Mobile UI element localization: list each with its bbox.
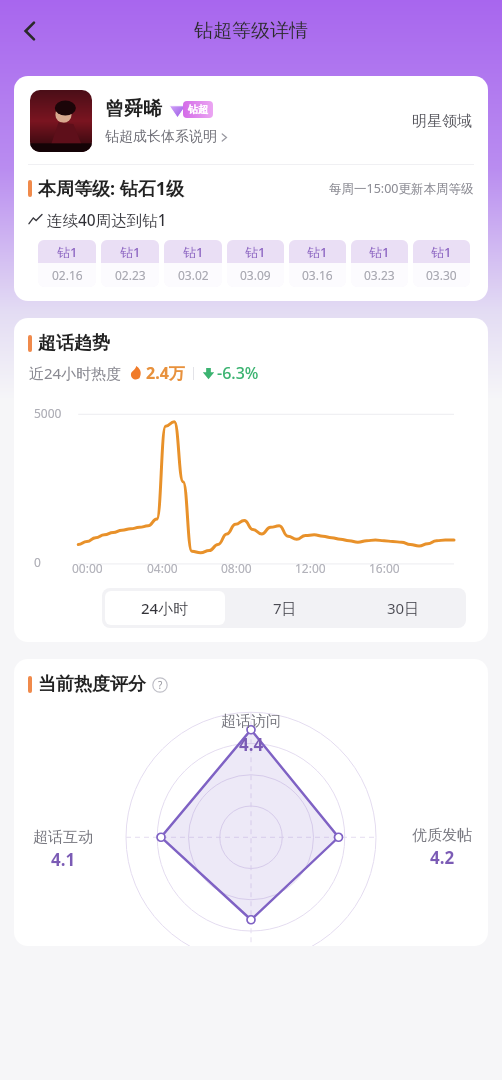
- staticText: 03.09: [240, 267, 271, 283]
- staticText: 12:00: [295, 560, 326, 576]
- staticText: 当前热度评分: [38, 673, 146, 696]
- staticText: 本周等级: 钻石1级: [38, 176, 185, 201]
- staticText: 02.23: [115, 267, 146, 283]
- staticText: 30日: [387, 598, 420, 618]
- staticText: 曾舜晞: [105, 97, 162, 121]
- staticText: 5000: [34, 405, 62, 421]
- button[interactable]: 钻1: [413, 240, 470, 287]
- staticText: ?: [158, 678, 163, 692]
- button[interactable]: 钻1: [227, 240, 284, 287]
- staticText: 4.1: [51, 848, 76, 871]
- staticText: 0: [34, 554, 41, 570]
- button[interactable]: 钻1: [38, 240, 96, 287]
- staticText: 24小时: [141, 598, 189, 618]
- staticText: 03.02: [178, 267, 209, 283]
- button[interactable]: 钻1: [164, 240, 222, 287]
- staticText: 7日: [273, 598, 297, 618]
- staticText: 超话互动: [33, 828, 93, 847]
- button[interactable]: 30日: [344, 591, 463, 625]
- staticText: 钻1: [307, 243, 328, 261]
- staticText: 钻1: [431, 243, 452, 261]
- staticText: 08:00: [221, 560, 252, 576]
- staticText: 03.30: [426, 267, 457, 283]
- staticText: 每周一15:00更新本周等级: [329, 180, 474, 197]
- staticText: 钻1: [57, 243, 78, 261]
- staticText: 连续40周达到钻1: [47, 209, 167, 230]
- button[interactable]: 7日: [225, 591, 344, 625]
- staticText: 钻超: [188, 103, 208, 116]
- staticText: 03.23: [364, 267, 395, 283]
- staticText: 4.4: [239, 733, 264, 756]
- staticText: 近24小时热度: [29, 363, 122, 383]
- staticText: 明星领域: [412, 112, 472, 131]
- staticText: 钻1: [120, 243, 141, 261]
- staticText: 超话趋势: [38, 332, 110, 355]
- staticText: 02.16: [52, 267, 83, 283]
- button[interactable]: 曾舜晞: [30, 90, 472, 152]
- staticText: 钻1: [245, 243, 266, 261]
- staticText: 03.16: [302, 267, 333, 283]
- staticText: 超话访问: [221, 712, 281, 731]
- staticText: 4.2: [430, 846, 455, 869]
- staticText: 钻1: [183, 243, 204, 261]
- button[interactable]: Help: [152, 677, 168, 693]
- staticText: 16:00: [369, 560, 400, 576]
- button[interactable]: 钻1: [351, 240, 408, 287]
- staticText: 钻1: [369, 243, 390, 261]
- staticText: 00:00: [72, 560, 103, 576]
- staticText: -6.3%: [217, 362, 259, 384]
- staticText: 优质发帖: [412, 826, 472, 845]
- staticText: 钻超成长体系说明: [105, 128, 217, 146]
- button[interactable]: 钻1: [289, 240, 346, 287]
- button[interactable]: 钻1: [101, 240, 159, 287]
- button[interactable]: 24小时: [105, 591, 225, 625]
- staticText: 04:00: [147, 560, 178, 576]
- staticText: 钻超等级详情: [194, 19, 308, 43]
- staticText: 2.4万: [146, 362, 185, 384]
- button[interactable]: Back: [8, 9, 52, 53]
